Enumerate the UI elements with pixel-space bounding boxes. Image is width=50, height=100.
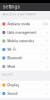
staticText: Display bbox=[7, 83, 19, 87]
staticText: Bluetooth bbox=[7, 56, 22, 60]
staticText: Airplane mode bbox=[7, 22, 30, 26]
button[interactable]: More bbox=[0, 62, 50, 71]
button[interactable]: Sound bbox=[0, 89, 50, 98]
staticText: Wi-Fi bbox=[7, 47, 16, 51]
staticText: > bbox=[46, 92, 48, 95]
button[interactable]: Data management bbox=[0, 28, 50, 37]
staticText: > bbox=[46, 83, 48, 87]
button[interactable]: Wi-Fi bbox=[0, 45, 50, 54]
button[interactable]: Display bbox=[0, 81, 50, 89]
staticText: Settings bbox=[3, 4, 20, 10]
button[interactable]: Mobile networks bbox=[0, 37, 50, 45]
staticText: > bbox=[46, 48, 48, 51]
staticText: > bbox=[46, 31, 48, 34]
button[interactable]: Airplane mode bbox=[0, 20, 50, 28]
staticText: DEVICE bbox=[2, 73, 13, 76]
staticText: > bbox=[46, 56, 48, 60]
staticText: Data management bbox=[7, 30, 36, 34]
staticText: > bbox=[46, 39, 48, 43]
staticText: Mobile networks bbox=[7, 39, 34, 43]
button[interactable]: Bluetooth bbox=[0, 54, 50, 62]
staticText: More bbox=[7, 64, 15, 68]
staticText: Sound bbox=[7, 91, 17, 95]
staticText: > bbox=[46, 65, 48, 68]
staticText: WIRELESS & NETWORKS bbox=[2, 13, 36, 16]
